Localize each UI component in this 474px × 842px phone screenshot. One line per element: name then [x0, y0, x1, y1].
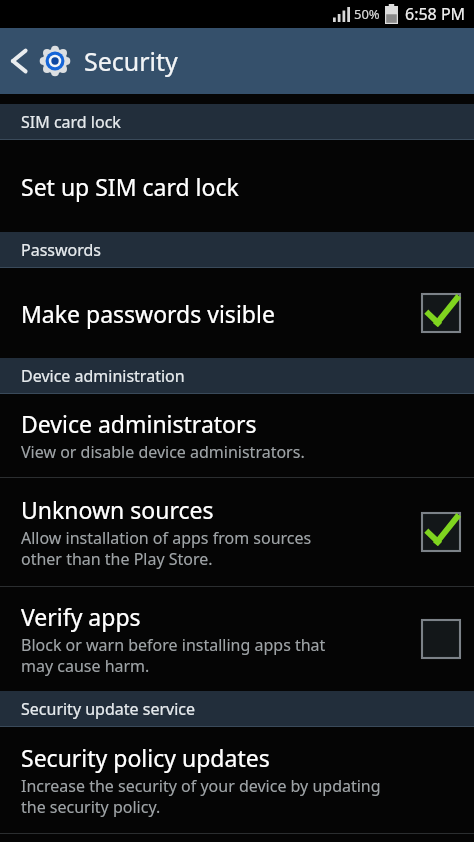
button[interactable]: Unchecked	[422, 620, 460, 658]
button[interactable]: Checked	[422, 294, 460, 332]
staticText: Device administration	[21, 365, 185, 387]
staticText: Device administrators	[21, 408, 257, 439]
button[interactable]: Set up SIM card lock	[0, 140, 474, 232]
staticText: Block or warn before installing apps tha…	[21, 634, 326, 677]
staticText: Security policy updates	[21, 742, 270, 773]
staticText: 50%	[354, 5, 380, 23]
staticText: Allow installation of apps from sources …	[21, 527, 312, 570]
staticText: View or disable device administrators.	[21, 441, 305, 463]
staticText: Set up SIM card lock	[21, 171, 239, 202]
staticText: SIM card lock	[21, 111, 121, 133]
button[interactable]: Make passwords visible	[0, 268, 474, 358]
staticText: Passwords	[21, 239, 102, 261]
button[interactable]: Unknown sources	[0, 478, 474, 586]
staticText: 6:58 PM	[405, 3, 466, 25]
button[interactable]: Back	[0, 28, 38, 94]
button[interactable]: Device administrators	[0, 394, 474, 477]
staticText: Increase the security of your device by …	[21, 775, 381, 818]
button[interactable]: Security policy updates	[0, 727, 474, 833]
staticText: Security update service	[21, 698, 195, 720]
button[interactable]: Verify apps	[0, 587, 474, 691]
button[interactable]: Checked	[422, 513, 460, 551]
button[interactable]: Settings	[38, 44, 72, 78]
staticText: Verify apps	[21, 601, 141, 632]
staticText: Unknown sources	[21, 494, 214, 525]
staticText: Make passwords visible	[21, 298, 275, 329]
staticText: Security	[84, 44, 178, 78]
